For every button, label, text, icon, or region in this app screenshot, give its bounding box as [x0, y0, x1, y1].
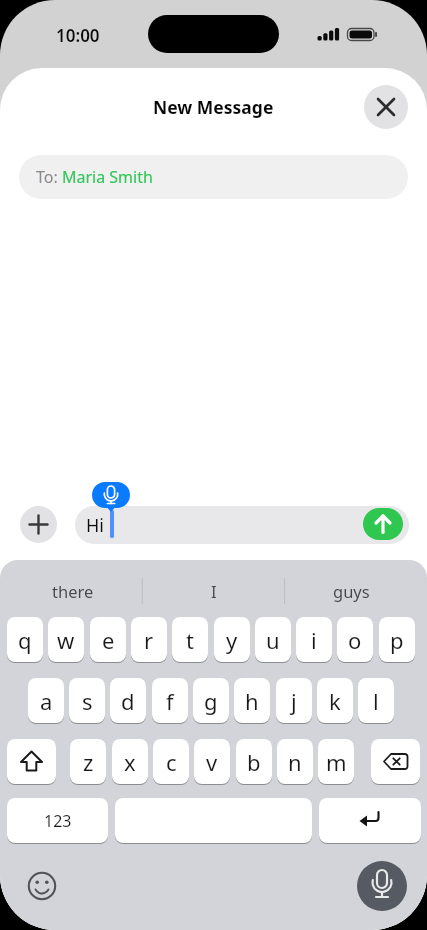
button[interactable]	[364, 85, 408, 129]
staticText: z	[83, 747, 94, 777]
button[interactable]: there	[4, 574, 142, 608]
staticText: j	[291, 686, 297, 716]
button[interactable]	[363, 508, 403, 540]
staticText: y	[226, 625, 238, 655]
staticText: t	[186, 625, 194, 655]
button[interactable]: I	[143, 574, 284, 608]
button[interactable]: 123	[7, 798, 108, 843]
button[interactable]: h	[234, 678, 270, 723]
button[interactable]	[20, 506, 57, 543]
staticText: 10:00	[56, 24, 100, 47]
staticText: p	[390, 625, 404, 655]
staticText: New Message	[153, 95, 274, 119]
staticText: b	[247, 747, 261, 777]
staticText: q	[18, 625, 32, 655]
button[interactable]: guys	[285, 574, 417, 608]
button[interactable]	[7, 739, 56, 784]
button[interactable]: d	[110, 678, 146, 723]
staticText: o	[348, 625, 362, 655]
staticText: d	[121, 686, 135, 716]
button[interactable]: q	[7, 617, 43, 662]
staticText: v	[206, 747, 218, 777]
staticText: x	[124, 747, 136, 777]
staticText: c	[166, 747, 177, 777]
staticText: k	[329, 686, 341, 716]
staticText: l	[373, 686, 379, 716]
staticText: there	[52, 580, 94, 602]
staticText: e	[102, 625, 115, 655]
button[interactable]: e	[90, 617, 126, 662]
button[interactable]: u	[255, 617, 291, 662]
staticText: m	[326, 747, 347, 777]
button[interactable]: l	[358, 678, 394, 723]
staticText: a	[40, 686, 53, 716]
button[interactable]: y	[214, 617, 250, 662]
staticText: Hi	[86, 513, 104, 538]
button[interactable]: j	[276, 678, 312, 723]
button[interactable]: m	[318, 739, 354, 784]
staticText: To: Maria Smith	[36, 166, 153, 188]
button[interactable]: Hi	[75, 506, 409, 544]
button[interactable]: x	[112, 739, 148, 784]
staticText: w	[57, 625, 75, 655]
button[interactable]: b	[236, 739, 272, 784]
button[interactable]: a	[28, 678, 64, 723]
button[interactable]	[115, 798, 312, 843]
button[interactable]: f	[152, 678, 188, 723]
button[interactable]: z	[70, 739, 106, 784]
button[interactable]: g	[193, 678, 229, 723]
button[interactable]: To: Maria Smith	[19, 155, 408, 199]
staticText: i	[311, 625, 317, 655]
button[interactable]: s	[69, 678, 105, 723]
staticText: u	[266, 625, 280, 655]
button[interactable]	[357, 861, 407, 911]
button[interactable]: w	[48, 617, 84, 662]
button[interactable]: r	[131, 617, 167, 662]
staticText: g	[204, 686, 218, 716]
button[interactable]: v	[194, 739, 230, 784]
button[interactable]: t	[172, 617, 208, 662]
button[interactable]: i	[296, 617, 332, 662]
staticText: f	[166, 686, 174, 716]
staticText: I	[211, 580, 217, 602]
button[interactable]: n	[277, 739, 313, 784]
button[interactable]: o	[337, 617, 373, 662]
staticText: guys	[333, 580, 370, 602]
staticText: 123	[44, 810, 72, 832]
button[interactable]	[319, 798, 421, 843]
staticText: s	[82, 686, 93, 716]
button[interactable]: p	[379, 617, 415, 662]
staticText: r	[144, 625, 154, 655]
staticText: n	[288, 747, 302, 777]
button[interactable]	[371, 739, 420, 784]
button[interactable]	[22, 866, 62, 906]
staticText: h	[245, 686, 259, 716]
button[interactable]: c	[153, 739, 189, 784]
button[interactable]: k	[317, 678, 353, 723]
